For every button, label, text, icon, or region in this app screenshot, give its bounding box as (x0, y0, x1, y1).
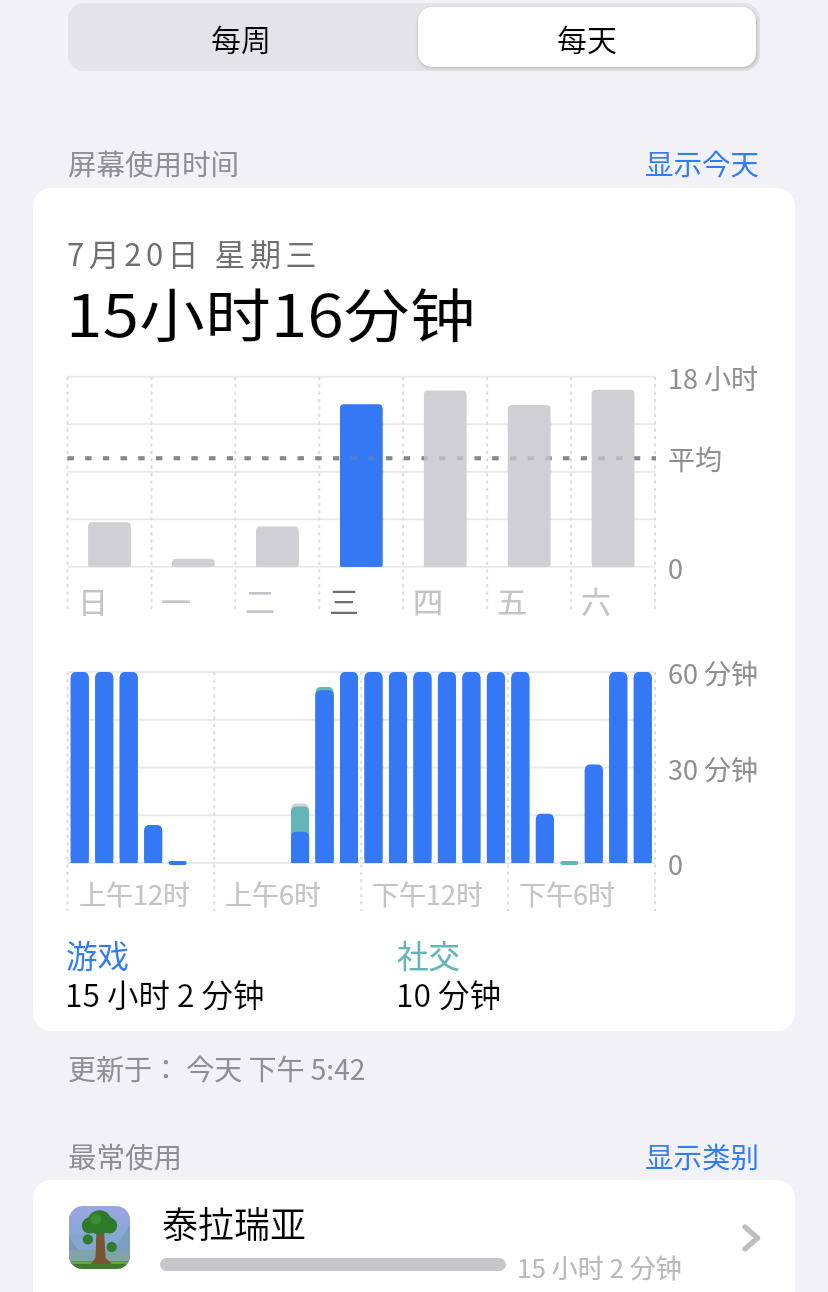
staticText: 四 (413, 578, 443, 621)
staticText: 下午6时 (519, 874, 615, 913)
staticText: 二 (245, 578, 275, 621)
staticText: 下午12时 (372, 874, 483, 913)
staticText: 15小时16分钟 (66, 270, 476, 354)
staticText: 社交 (397, 931, 461, 977)
staticText: 18 小时 (668, 358, 759, 397)
staticText: 五 (497, 578, 527, 621)
staticText: 30 分钟 (668, 749, 759, 788)
staticText: 平均 (668, 439, 722, 478)
staticText: 更新于： 今天 下午 5:42 (68, 1048, 366, 1089)
staticText: 15 小时 2 分钟 (65, 970, 265, 1016)
staticText: 显示类别 (645, 1135, 760, 1176)
staticText: 每周 (211, 16, 271, 59)
staticText: 0 (668, 548, 683, 587)
staticText: 泰拉瑞亚 (162, 1196, 307, 1248)
staticText: 60 分钟 (668, 653, 759, 692)
staticText: 三 (329, 578, 359, 621)
staticText: 屏幕使用时间 (68, 142, 240, 183)
button[interactable]: 显示类别 (645, 1135, 760, 1176)
staticText: 上午12时 (79, 874, 190, 913)
other: Details (728, 1208, 788, 1268)
staticText: 日 (78, 578, 108, 621)
staticText: 显示今天 (645, 142, 760, 183)
button[interactable]: 每天 (418, 7, 756, 67)
button[interactable]: 每周 (68, 3, 414, 71)
button[interactable]: 7月20日 星期三 (33, 188, 795, 1031)
staticText: 六 (581, 578, 611, 621)
staticText: 每天 (557, 16, 617, 59)
staticText: 7月20日 星期三 (67, 230, 322, 275)
button[interactable]: 显示今天 (645, 142, 760, 183)
button[interactable]: 泰拉瑞亚 (33, 1180, 795, 1292)
staticText: 游戏 (66, 931, 130, 977)
staticText: 上午6时 (225, 874, 321, 913)
staticText: 0 (668, 844, 683, 883)
staticText: 最常使用 (68, 1135, 183, 1176)
staticText: 10 分钟 (396, 970, 502, 1016)
staticText: 一 (161, 578, 191, 621)
staticText: 15 小时 2 分钟 (517, 1248, 682, 1286)
